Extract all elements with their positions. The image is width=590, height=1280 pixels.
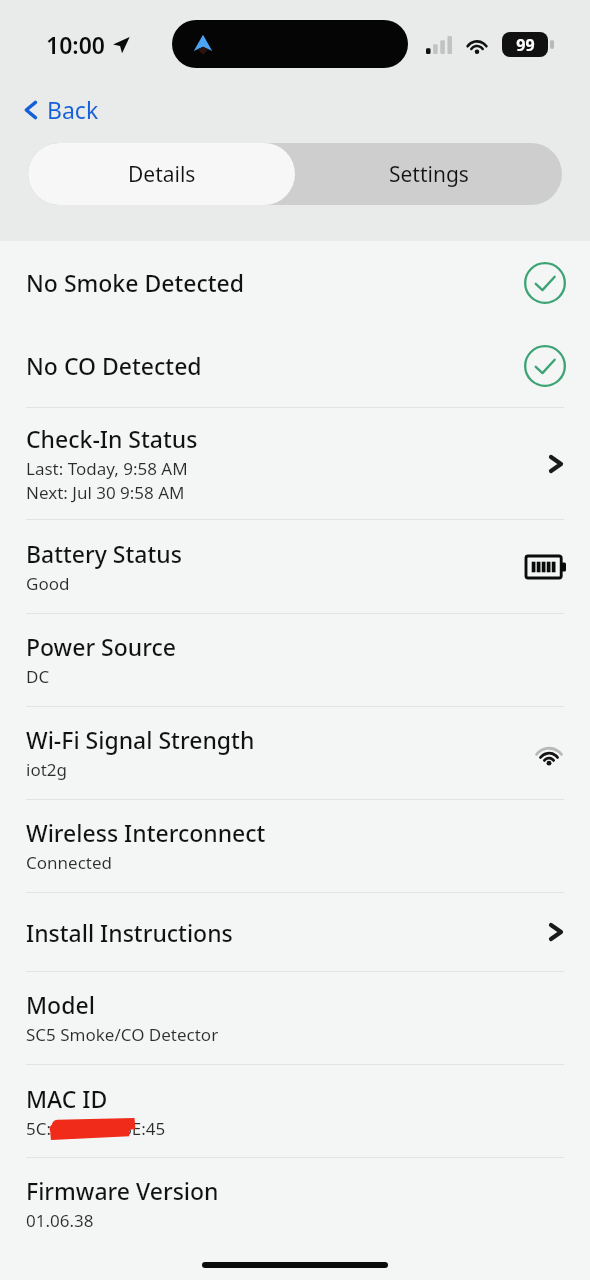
staticText: Connected bbox=[26, 851, 112, 874]
staticText: DC bbox=[26, 665, 50, 688]
button[interactable]: No CO Detected bbox=[0, 324, 590, 407]
staticText: Model bbox=[26, 989, 95, 1020]
other: Status OK bbox=[524, 262, 566, 304]
button[interactable]: Wi-Fi Signal Strength bbox=[0, 707, 590, 799]
staticText: 10:00 bbox=[46, 29, 105, 60]
button[interactable]: Settings bbox=[295, 143, 562, 205]
button[interactable]: Firmware Version bbox=[0, 1158, 590, 1250]
other: Status OK bbox=[524, 345, 566, 387]
button[interactable]: Model bbox=[0, 972, 590, 1064]
staticText: Settings bbox=[389, 160, 469, 189]
staticText: Good bbox=[26, 572, 70, 595]
staticText: No Smoke Detected bbox=[26, 267, 524, 298]
staticText: 01.06.38 bbox=[26, 1209, 94, 1232]
other: Install Instructions bbox=[546, 916, 566, 948]
button[interactable]: Power Source bbox=[0, 614, 590, 706]
staticText: Check-In Status bbox=[26, 423, 198, 454]
staticText: Next: Jul 30 9:58 AM bbox=[26, 481, 185, 504]
staticText: Battery Status bbox=[26, 538, 182, 569]
button[interactable]: Install Instructions bbox=[0, 893, 590, 971]
staticText: Wireless Interconnect bbox=[26, 817, 266, 848]
staticText: No CO Detected bbox=[26, 350, 524, 381]
staticText: Wi-Fi Signal Strength bbox=[26, 724, 255, 755]
button[interactable]: Details bbox=[28, 143, 295, 205]
button[interactable]: Wireless Interconnect bbox=[0, 800, 590, 892]
staticText: Last: Today, 9:58 AM bbox=[26, 457, 188, 480]
staticText: 99 bbox=[516, 34, 535, 56]
staticText: MAC ID bbox=[26, 1083, 108, 1114]
button[interactable]: Check-In Status bbox=[0, 408, 590, 519]
staticText: 5C:1F:00:00:5E:45 bbox=[26, 1117, 166, 1140]
button[interactable]: MAC ID bbox=[0, 1065, 590, 1157]
other: Check-In Status details bbox=[546, 448, 566, 480]
staticText: Install Instructions bbox=[26, 917, 233, 948]
staticText: Firmware Version bbox=[26, 1175, 219, 1206]
button[interactable]: Back bbox=[18, 88, 105, 131]
staticText: Power Source bbox=[26, 631, 176, 662]
staticText: iot2g bbox=[26, 758, 67, 781]
staticText: Details bbox=[128, 160, 196, 189]
staticText: Back bbox=[47, 94, 99, 125]
staticText: SC5 Smoke/CO Detector bbox=[26, 1023, 219, 1046]
button[interactable]: Battery Status bbox=[0, 520, 590, 613]
button[interactable]: No Smoke Detected bbox=[0, 241, 590, 324]
